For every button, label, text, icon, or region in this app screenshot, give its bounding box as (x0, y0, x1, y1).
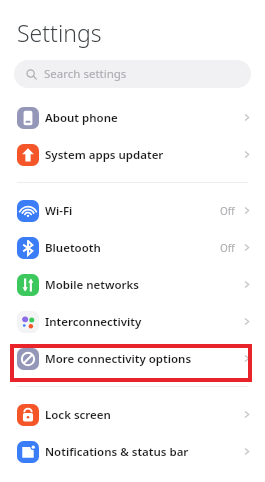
button[interactable]: Wi-Fi (0, 192, 265, 229)
button[interactable]: Bluetooth (0, 229, 265, 266)
button[interactable]: Interconnectivity (0, 303, 265, 340)
staticText: More connectivity options (45, 351, 192, 367)
staticText: Interconnectivity (45, 314, 142, 330)
button[interactable]: Lock screen (0, 396, 265, 433)
staticText: About phone (45, 110, 118, 126)
button[interactable]: About phone (0, 99, 265, 136)
button[interactable]: Search settings (14, 60, 251, 88)
staticText: Off (220, 241, 235, 255)
staticText: Notifications & status bar (45, 444, 189, 460)
staticText: Off (220, 204, 235, 218)
staticText: Mobile networks (45, 277, 140, 293)
staticText: Wi-Fi (45, 203, 73, 219)
staticText: Settings (17, 17, 102, 48)
button[interactable]: Mobile networks (0, 266, 265, 303)
staticText: Lock screen (45, 407, 111, 423)
button[interactable]: More connectivity options (0, 340, 265, 377)
staticText: Search settings (44, 66, 127, 82)
button[interactable]: System apps updater (0, 136, 265, 173)
staticText: Bluetooth (45, 240, 101, 256)
staticText: System apps updater (45, 147, 164, 163)
button[interactable]: Notifications & status bar (0, 433, 265, 470)
